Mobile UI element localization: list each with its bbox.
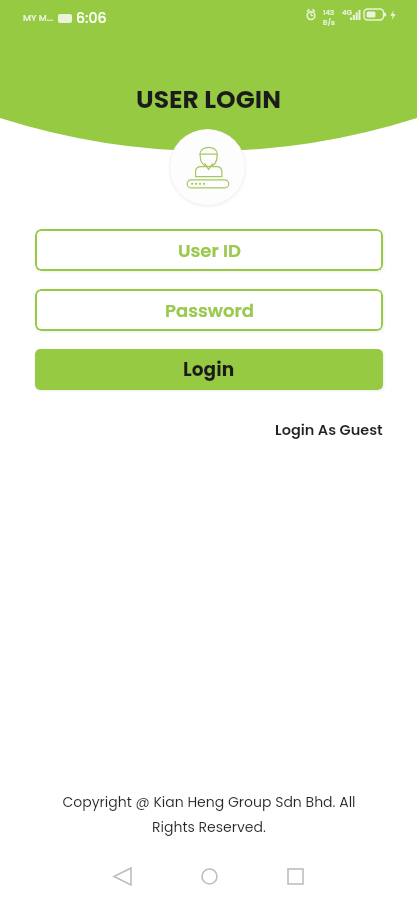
button[interactable]: Recent apps	[273, 854, 317, 898]
staticText: USER LOGIN	[136, 82, 281, 117]
staticText: Password	[165, 298, 254, 323]
button[interactable]: User ID	[35, 229, 383, 271]
staticText: User ID	[178, 238, 241, 263]
staticText: Rights Reserved.	[152, 817, 266, 837]
staticText: 4G	[342, 8, 352, 18]
staticText: Login	[183, 357, 235, 383]
staticText: 6:06	[76, 8, 107, 28]
button[interactable]: Home	[187, 854, 231, 898]
staticText: Login As Guest	[275, 420, 383, 440]
staticText: B/s	[323, 18, 335, 28]
button[interactable]: Login	[35, 349, 383, 390]
button[interactable]: Password	[35, 289, 383, 331]
button[interactable]: Login As Guest	[275, 420, 383, 440]
staticText: MY M...	[23, 12, 54, 25]
button[interactable]: Back	[100, 854, 144, 898]
staticText: Copyright @ Kian Heng Group Sdn Bhd. All	[62, 792, 356, 812]
staticText: 143	[323, 8, 335, 18]
